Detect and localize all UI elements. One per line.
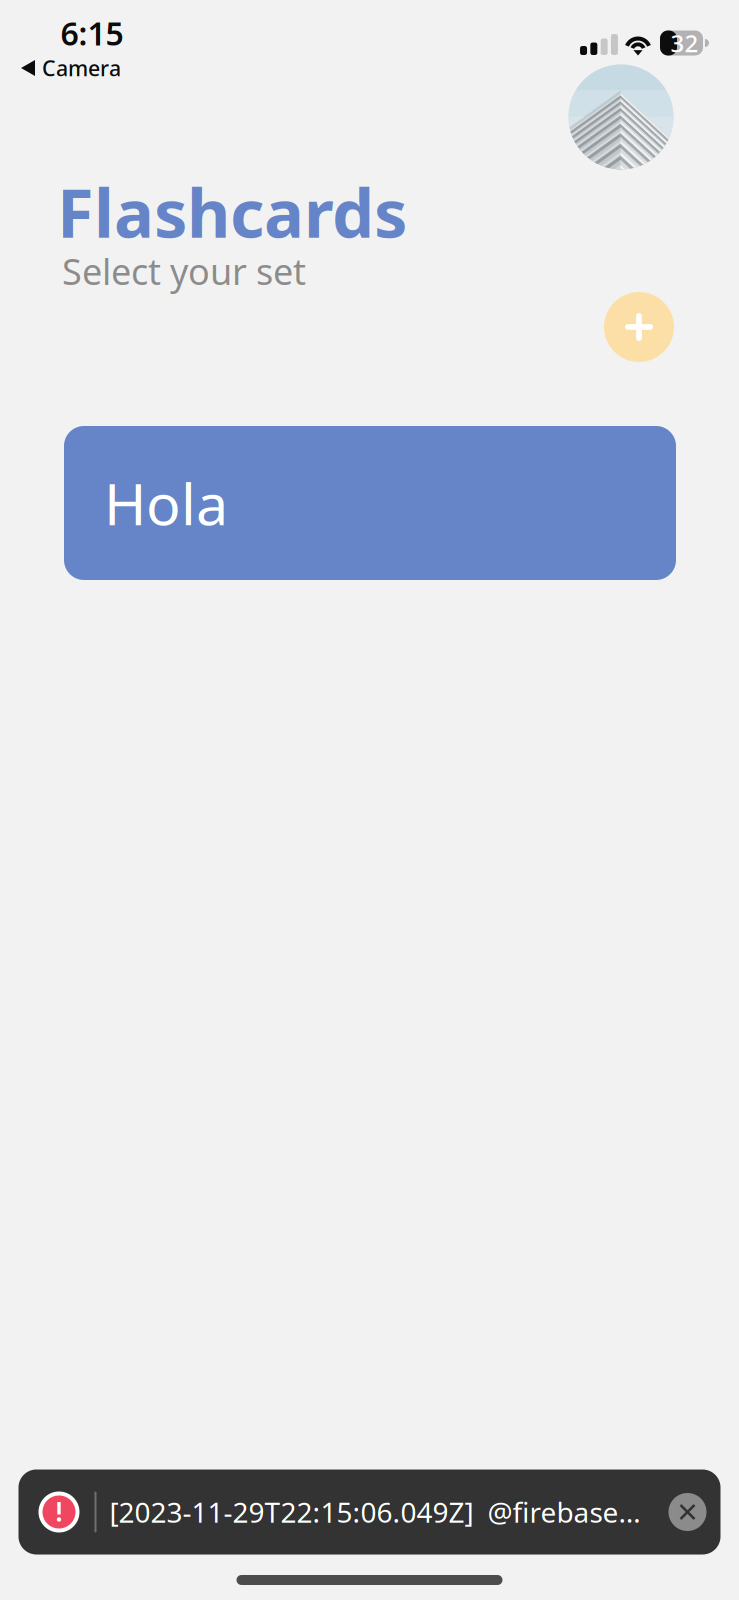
button[interactable]: Camera	[13, 48, 129, 88]
button[interactable]: Hola	[64, 426, 676, 580]
staticText: Camera	[42, 54, 121, 82]
staticText: Select your set	[62, 247, 306, 295]
button[interactable]: Add set	[604, 292, 674, 362]
button[interactable]: Dismiss console message	[660, 1485, 714, 1539]
staticText: 6:15	[60, 12, 123, 54]
staticText: [2023-11-29T22:15:06.049Z] @firebase/fir…	[109, 1493, 646, 1531]
staticText: 32	[670, 27, 698, 59]
staticText: Hola	[104, 465, 228, 541]
button[interactable]: Profile	[568, 64, 673, 169]
staticText: Flashcards	[57, 168, 407, 256]
